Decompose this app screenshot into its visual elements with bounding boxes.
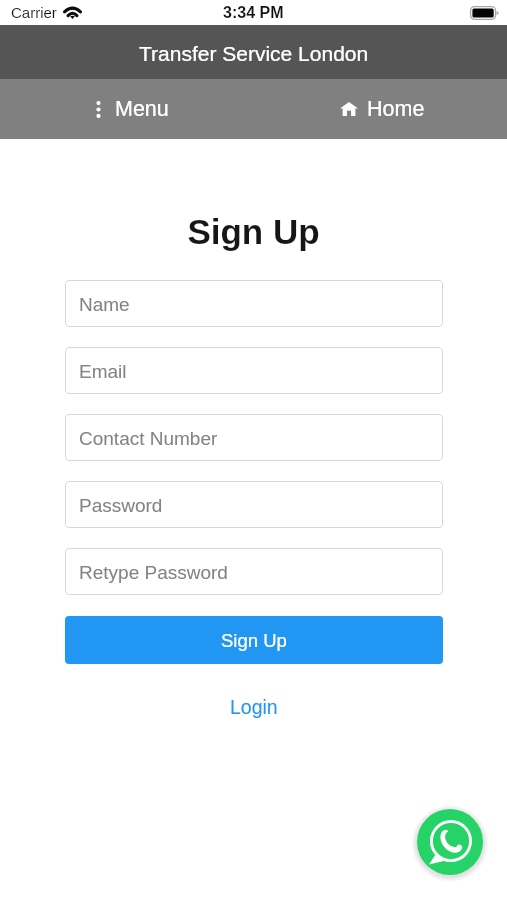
button[interactable]: Sign Up <box>65 616 443 664</box>
staticText: Sign Up <box>221 630 287 651</box>
staticText: Carrier <box>11 4 57 21</box>
button[interactable]: Retype Password <box>65 548 443 595</box>
staticText: Login <box>230 696 278 718</box>
staticText: Name <box>79 294 130 315</box>
button[interactable]: Email <box>65 347 443 394</box>
button[interactable]: Home <box>253 79 507 139</box>
button[interactable]: Login <box>220 694 288 720</box>
staticText: Menu <box>115 97 169 121</box>
button[interactable]: Chat on WhatsApp <box>417 809 483 875</box>
staticText: Transfer Service London <box>139 42 369 65</box>
button[interactable]: Contact Number <box>65 414 443 461</box>
staticText: Password <box>79 495 163 516</box>
button[interactable]: Name <box>65 280 443 327</box>
button[interactable]: Password <box>65 481 443 528</box>
staticText: Email <box>79 361 127 382</box>
staticText: Home <box>367 97 425 121</box>
staticText: 3:34 PM <box>223 4 284 22</box>
staticText: Contact Number <box>79 428 218 449</box>
staticText: Sign Up <box>0 212 507 251</box>
staticText: Retype Password <box>79 562 228 583</box>
button[interactable]: Menu <box>0 79 253 139</box>
